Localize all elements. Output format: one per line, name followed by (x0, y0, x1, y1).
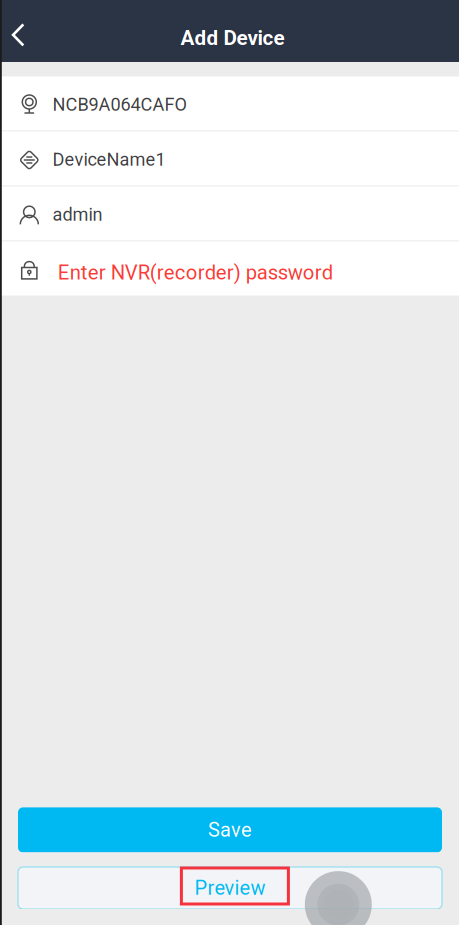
button[interactable]: Save (18, 807, 442, 852)
staticText: Preview (194, 876, 265, 900)
staticText: DeviceName1 (53, 149, 166, 170)
staticText: NCB9A064CAFO (53, 94, 187, 115)
staticText: admin (53, 204, 103, 225)
button[interactable]: DeviceName1 (0, 131, 459, 185)
button[interactable]: Back (0, 13, 40, 57)
button[interactable]: NCB9A064CAFO (0, 76, 459, 130)
staticText: Enter NVR(recorder) password (58, 261, 333, 284)
staticText: Add Device (180, 26, 284, 50)
button[interactable]: admin (0, 186, 459, 240)
staticText: Save (208, 818, 252, 842)
button[interactable]: Preview (18, 867, 442, 909)
button[interactable]: Enter NVR(recorder) password (0, 241, 459, 295)
